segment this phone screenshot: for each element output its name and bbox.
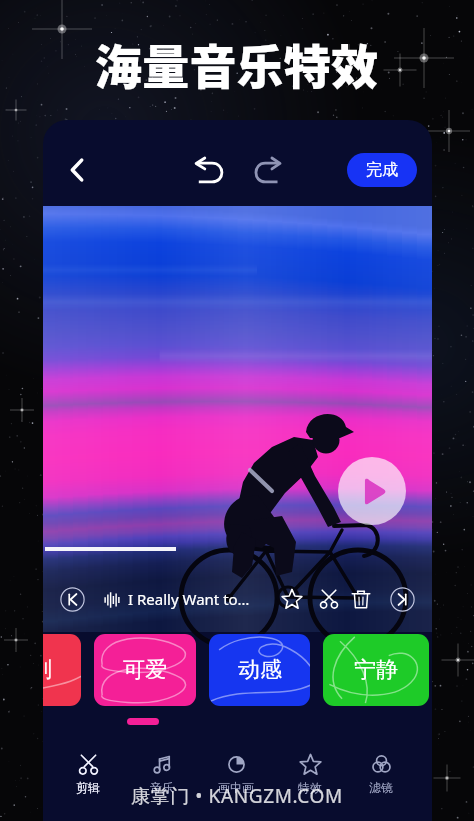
staticText: 完成 bbox=[366, 160, 398, 180]
button[interactable]: 滤镜 bbox=[350, 754, 412, 795]
button[interactable]: Delete bbox=[347, 585, 375, 613]
button[interactable]: 剪辑 bbox=[57, 754, 119, 795]
staticText: 剪辑 bbox=[76, 780, 100, 795]
button[interactable]: Previous clip bbox=[58, 585, 86, 613]
button[interactable]: Favorite bbox=[278, 585, 306, 613]
button[interactable]: Undo bbox=[188, 150, 230, 192]
staticText: I Really Want to… bbox=[128, 589, 250, 609]
button[interactable]: 动感 bbox=[209, 634, 310, 706]
button[interactable]: 刚 bbox=[43, 634, 81, 706]
staticText: 海量音乐特效 bbox=[95, 29, 379, 97]
button[interactable]: Back bbox=[57, 150, 97, 190]
button[interactable]: Redo bbox=[247, 150, 289, 192]
button[interactable]: Play bbox=[338, 457, 406, 525]
staticText: 刚 bbox=[43, 656, 52, 684]
button[interactable]: 音乐 bbox=[131, 754, 193, 795]
button[interactable]: 可爱 bbox=[94, 634, 196, 706]
staticText: 动感 bbox=[238, 656, 282, 684]
button[interactable]: Next clip bbox=[388, 585, 416, 613]
staticText: 音乐 bbox=[150, 780, 174, 795]
staticText: 可爱 bbox=[123, 656, 167, 684]
staticText: 康掌门 • KANGZM.COM bbox=[131, 783, 343, 809]
staticText: 宁静 bbox=[354, 656, 398, 684]
button[interactable]: 特效 bbox=[279, 754, 341, 795]
staticText: 特效 bbox=[298, 780, 322, 795]
staticText: 画中画 bbox=[218, 780, 254, 795]
button[interactable]: 宁静 bbox=[323, 634, 429, 706]
staticText: 滤镜 bbox=[369, 780, 393, 795]
button[interactable]: 完成 bbox=[347, 153, 417, 187]
button[interactable]: I Really Want to… bbox=[128, 578, 288, 620]
button[interactable]: Cut bbox=[315, 585, 343, 613]
button[interactable]: 画中画 bbox=[205, 754, 267, 795]
